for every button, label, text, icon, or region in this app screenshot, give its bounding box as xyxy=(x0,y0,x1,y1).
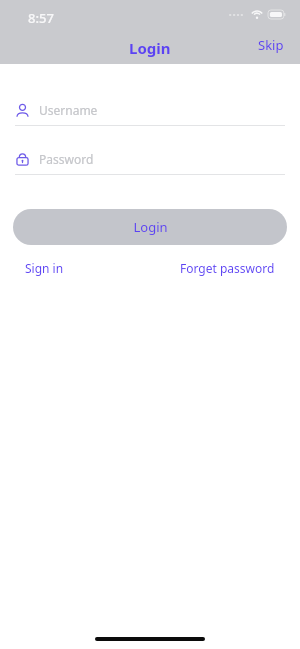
other: Password xyxy=(15,152,30,167)
staticText: Login xyxy=(133,218,168,236)
staticText: Sign in xyxy=(25,260,64,276)
button[interactable]: Username xyxy=(15,99,285,121)
button[interactable]: Login xyxy=(13,209,287,245)
staticText: Login xyxy=(129,38,171,58)
staticText: Password xyxy=(39,151,94,167)
button[interactable]: Sign in xyxy=(19,256,70,280)
staticText: Skip xyxy=(258,36,284,54)
staticText: 8:57 xyxy=(28,9,54,27)
other: Username xyxy=(15,103,30,118)
button[interactable]: Skip xyxy=(252,32,290,58)
staticText: Username xyxy=(39,102,98,118)
button[interactable]: Forget password xyxy=(174,256,281,280)
button[interactable]: Password xyxy=(15,148,285,170)
staticText: Forget password xyxy=(180,260,275,276)
